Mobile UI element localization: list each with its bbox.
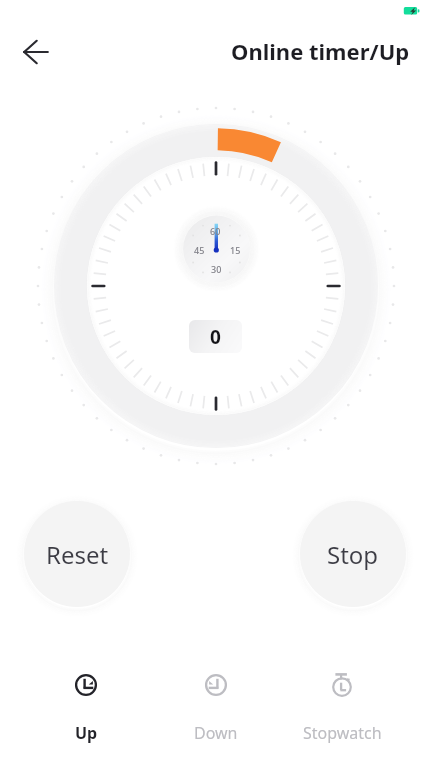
staticText: Stop (327, 538, 379, 571)
staticText: 30 (211, 263, 222, 275)
staticText: 0 (210, 324, 221, 350)
staticText: 15 (230, 244, 241, 256)
button[interactable]: Reset (24, 501, 130, 607)
button[interactable]: Up (24, 658, 148, 762)
staticText: 45 (194, 244, 205, 256)
button[interactable]: Stop (300, 501, 406, 607)
staticText: 60 (210, 225, 221, 237)
staticText: Down (194, 722, 238, 744)
button[interactable]: Stopwatch (280, 658, 404, 762)
staticText: Online timer/Up (231, 36, 410, 66)
staticText: Stopwatch (303, 722, 382, 744)
staticText: Up (75, 722, 98, 744)
button[interactable]: Back (16, 32, 56, 72)
button[interactable]: Down (154, 658, 278, 762)
staticText: Reset (46, 538, 109, 571)
